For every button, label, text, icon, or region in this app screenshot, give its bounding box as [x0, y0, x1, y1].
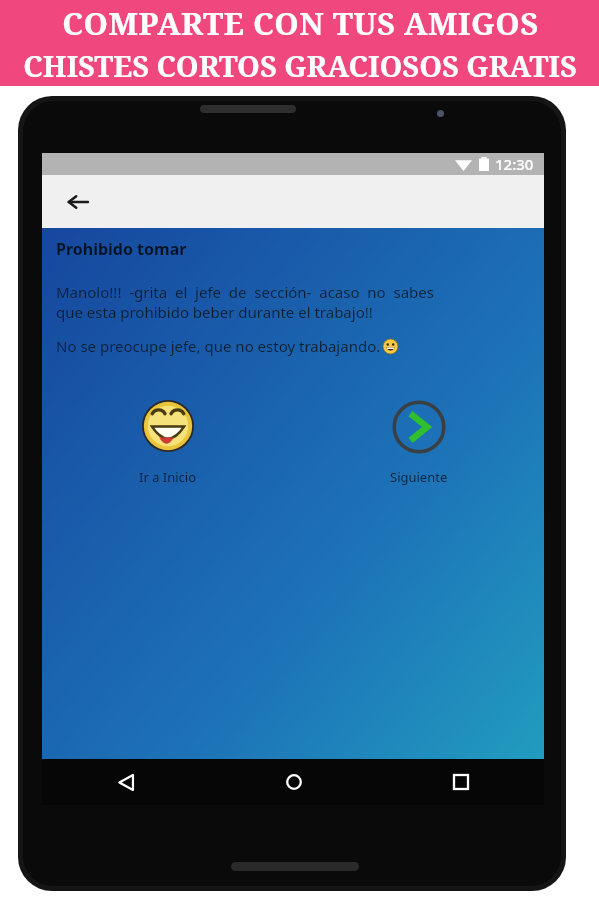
staticText: Ir a Inicio — [139, 468, 197, 486]
staticText: Prohibido tomar — [56, 238, 187, 260]
staticText: CHISTES CORTOS GRACIOSOS GRATIS — [23, 46, 577, 85]
staticText: 12:30 — [495, 154, 534, 174]
button[interactable]: Siguiente — [293, 400, 544, 486]
button[interactable]: Back — [42, 759, 210, 805]
button[interactable]: Back — [58, 182, 98, 222]
staticText: Manolo!!! -grita el jefe de sección- aca… — [56, 282, 434, 302]
staticText: No se preocupe jefe, que no estoy trabaj… — [56, 336, 381, 356]
staticText: que esta prohibido beber durante el trab… — [56, 302, 373, 322]
staticText: Siguiente — [390, 468, 448, 486]
staticText: COMPARTE CON TUS AMIGOS — [62, 2, 539, 44]
button[interactable]: Ir a Inicio — [42, 400, 293, 486]
button[interactable]: Recent apps — [377, 759, 544, 805]
button[interactable]: Home — [210, 759, 377, 805]
